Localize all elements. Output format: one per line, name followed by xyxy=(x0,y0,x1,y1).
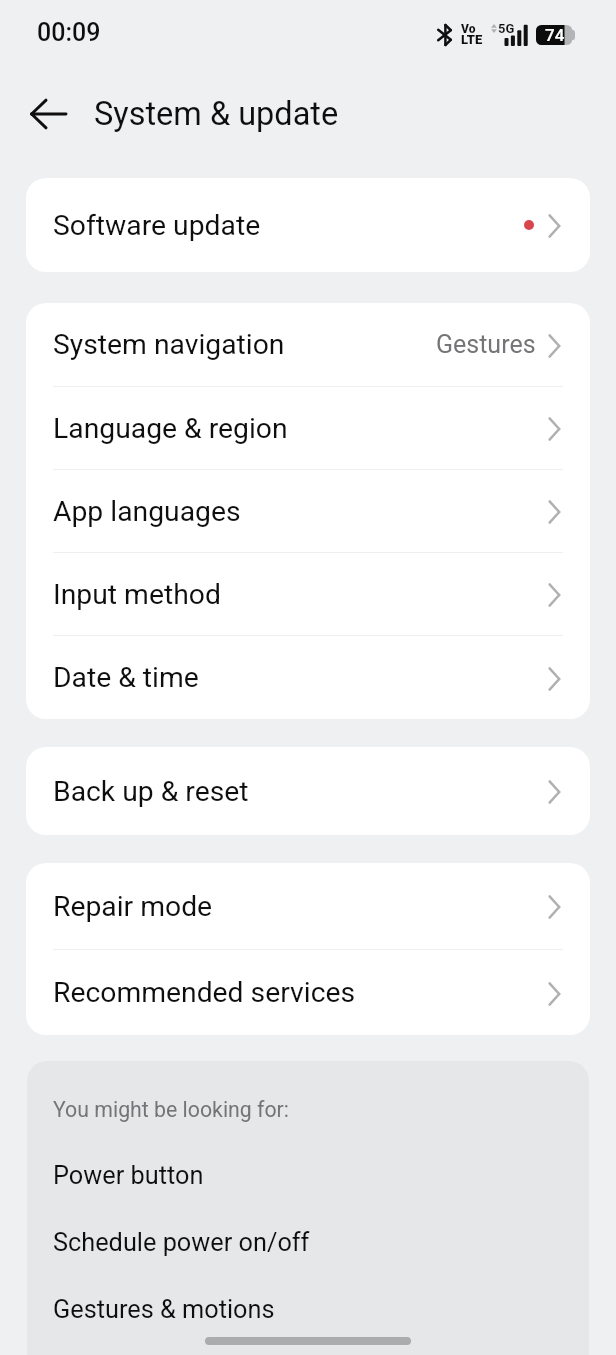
button[interactable]: Back up & reset xyxy=(26,747,590,835)
staticText: Power button xyxy=(53,1161,204,1191)
button[interactable]: Back xyxy=(17,83,79,145)
button[interactable]: Software update xyxy=(26,178,590,272)
staticText: Gestures & motions xyxy=(53,1295,275,1325)
staticText: Software update xyxy=(53,209,261,242)
staticText: Back up & reset xyxy=(53,775,249,808)
button[interactable]: Date & time xyxy=(26,636,590,719)
staticText: Input method xyxy=(53,578,221,611)
staticText: 00:09 xyxy=(37,18,101,47)
button[interactable]: App languages xyxy=(26,470,590,552)
staticText: LTE xyxy=(461,32,483,47)
staticText: System navigation xyxy=(53,328,285,361)
button[interactable]: Language & region xyxy=(26,387,590,469)
staticText: Schedule power on/off xyxy=(53,1228,310,1258)
button[interactable]: Gestures & motions xyxy=(27,1276,589,1343)
staticText: 74 xyxy=(545,25,565,45)
button[interactable]: Input method xyxy=(26,553,590,635)
staticText: Date & time xyxy=(53,661,199,694)
staticText: Language & region xyxy=(53,412,288,445)
staticText: Recommended services xyxy=(53,976,356,1009)
staticText: Repair mode xyxy=(53,890,213,923)
button[interactable]: System navigation xyxy=(26,303,590,386)
button[interactable]: Power button xyxy=(27,1142,589,1209)
button[interactable]: Schedule power on/off xyxy=(27,1209,589,1276)
staticText: Vo xyxy=(461,22,476,36)
button[interactable]: Repair mode xyxy=(26,863,590,949)
staticText: App languages xyxy=(53,495,241,528)
staticText: You might be looking for: xyxy=(53,1097,289,1122)
button[interactable]: Recommended services xyxy=(26,950,590,1035)
staticText: 5G xyxy=(498,21,515,36)
staticText: System & update xyxy=(94,95,339,133)
staticText: Gestures xyxy=(436,330,536,359)
